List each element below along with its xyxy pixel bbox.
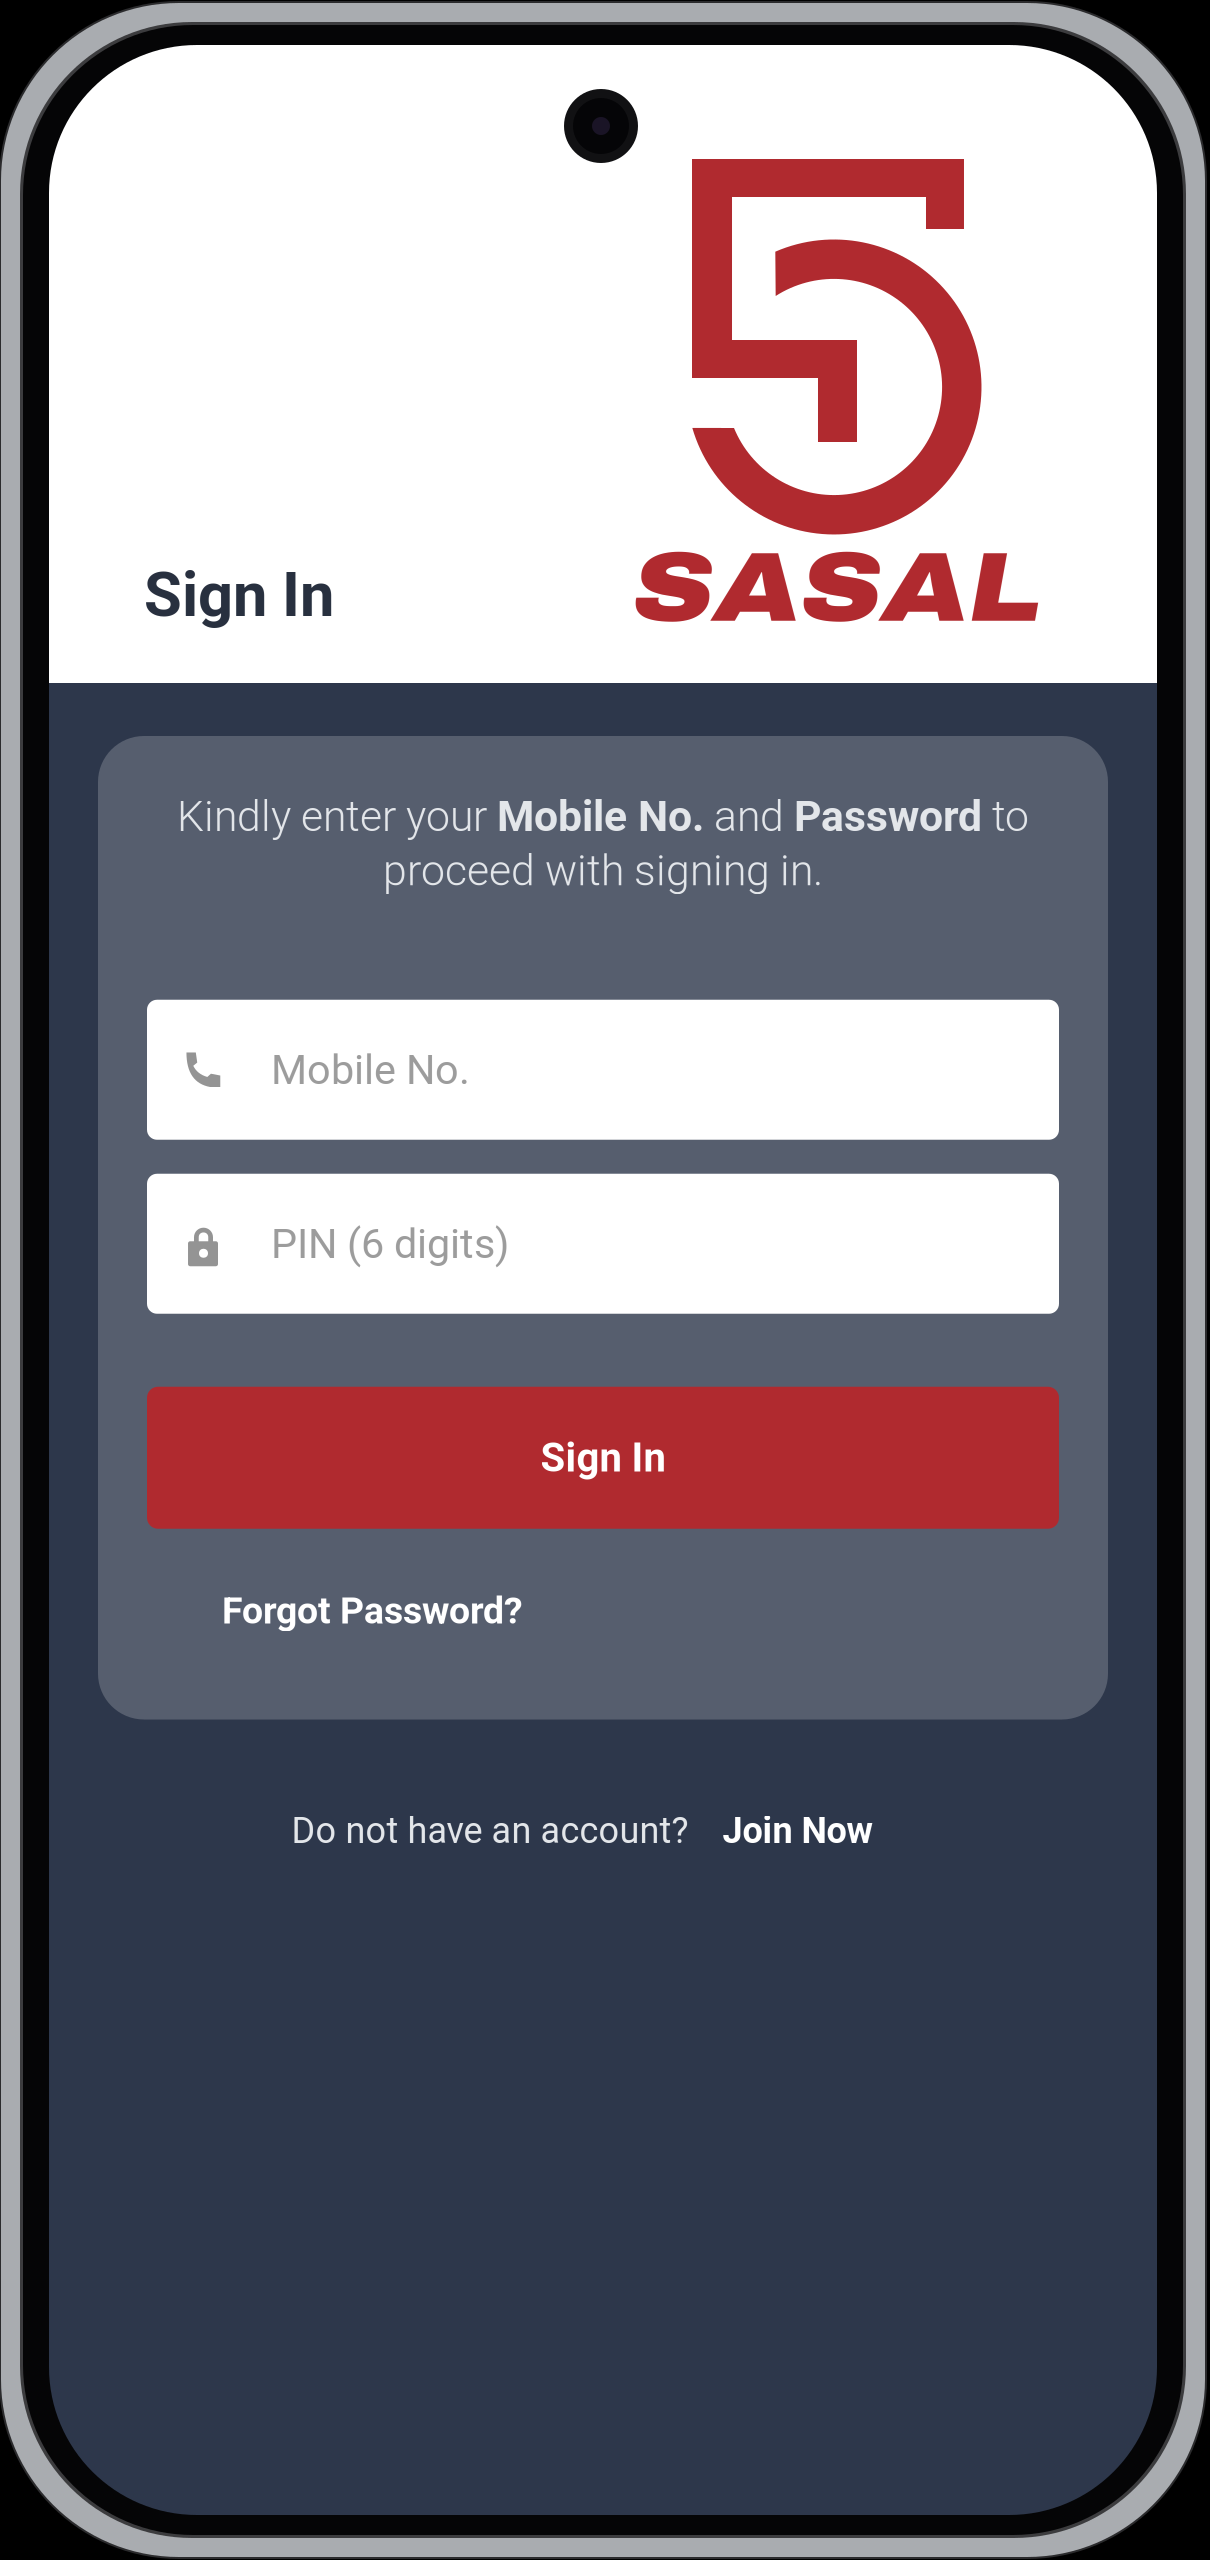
staticText: Join Now — [722, 1809, 872, 1852]
staticText: Forgot Password? — [222, 1589, 523, 1632]
staticText: proceed with signing in. — [383, 846, 823, 896]
staticText: Sign In — [144, 559, 334, 631]
button[interactable]: Sign In — [147, 1387, 1059, 1529]
staticText: Sign In — [540, 1434, 665, 1481]
staticText: SASAL — [633, 534, 1042, 641]
staticText: Mobile No. — [271, 1045, 470, 1094]
button[interactable]: Mobile No. — [147, 1000, 1059, 1140]
button[interactable]: Forgot Password? — [222, 1571, 523, 1650]
staticText: Kindly enter your Mobile No. and Passwor… — [177, 792, 1029, 841]
button[interactable]: PIN (6 digits) — [147, 1174, 1059, 1314]
button[interactable]: Join Now — [722, 1809, 872, 1852]
staticText: PIN (6 digits) — [271, 1219, 509, 1268]
staticText: Do not have an account? — [291, 1809, 688, 1852]
